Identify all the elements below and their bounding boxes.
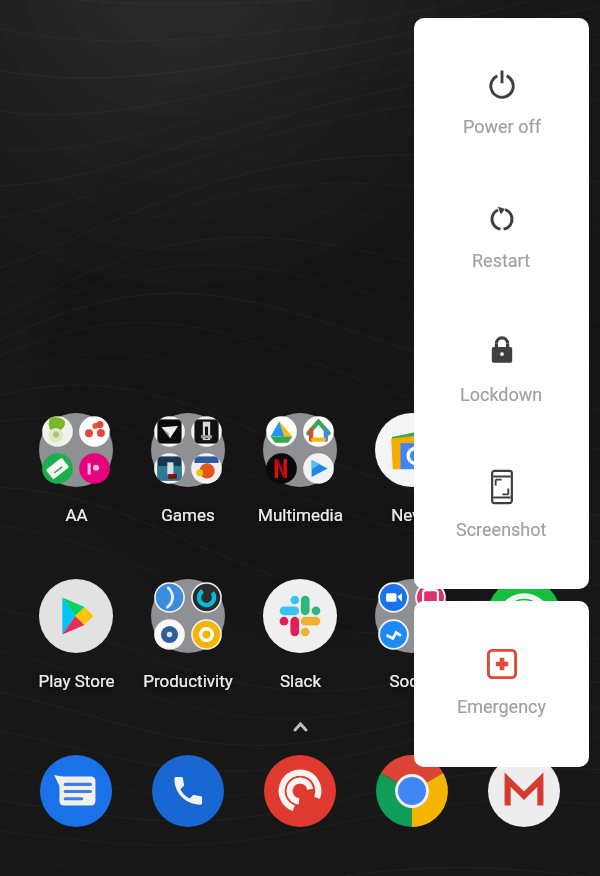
staticText: Spotify	[498, 671, 551, 691]
staticText: AA	[65, 505, 88, 525]
staticText: Games	[161, 505, 215, 525]
staticText: Lockdown	[460, 384, 543, 405]
staticText: Power off	[463, 116, 541, 137]
button[interactable]: Keep	[468, 407, 580, 511]
staticText: Play Store	[38, 671, 115, 691]
button[interactable]: Gmail	[487, 754, 561, 828]
button[interactable]: Chrome	[375, 754, 449, 828]
button[interactable]: Pocket Casts	[263, 754, 337, 828]
button[interactable]: AA	[20, 407, 132, 511]
button[interactable]: Social	[356, 573, 468, 677]
button[interactable]: Power off	[414, 40, 589, 150]
staticText: Keep	[505, 505, 544, 525]
button[interactable]: News	[356, 407, 468, 511]
button[interactable]: Phone	[151, 754, 225, 828]
staticText: Social	[389, 671, 436, 691]
staticText: News	[391, 505, 434, 525]
button[interactable]: Play Store	[20, 573, 132, 677]
button[interactable]: Emergency	[414, 620, 589, 730]
button[interactable]: Screenshot	[414, 443, 589, 553]
button[interactable]: Lockdown	[414, 308, 589, 418]
button[interactable]: Spotify	[468, 573, 580, 677]
button[interactable]: Games	[132, 407, 244, 511]
button[interactable]: Productivity	[132, 573, 244, 677]
staticText: Multimedia	[258, 505, 343, 525]
button[interactable]: Messages	[39, 754, 113, 828]
staticText: Slack	[280, 671, 321, 691]
staticText: Restart	[472, 250, 531, 271]
button[interactable]: Slack	[244, 573, 356, 677]
staticText: Emergency	[457, 696, 547, 717]
button[interactable]: Multimedia	[244, 407, 356, 511]
staticText: Productivity	[143, 671, 233, 691]
button[interactable]: Open app drawer	[288, 716, 312, 738]
staticText: Screenshot	[456, 519, 547, 540]
button[interactable]: Restart	[414, 174, 589, 284]
